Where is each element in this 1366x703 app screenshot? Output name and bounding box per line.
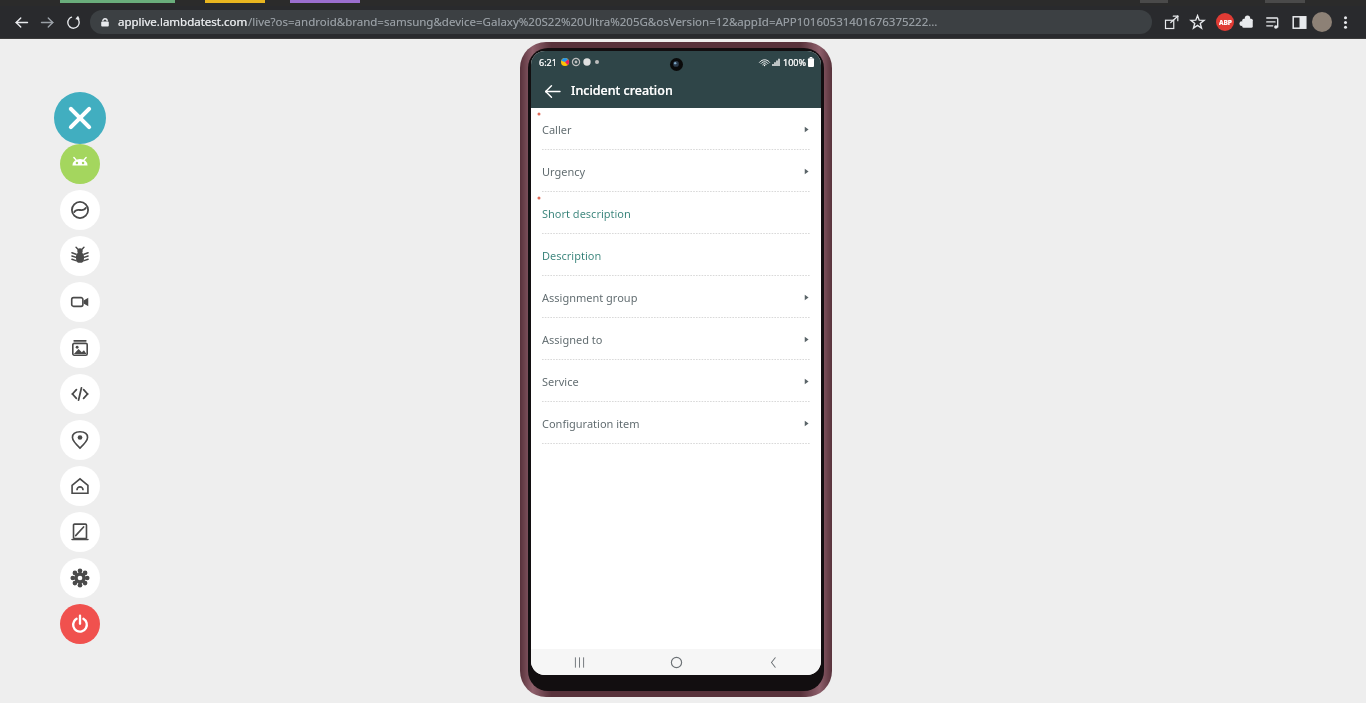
button[interactable]: Power bbox=[60, 604, 100, 644]
button[interactable]: Recent apps bbox=[556, 650, 602, 674]
button[interactable]: Reload bbox=[60, 9, 86, 35]
button[interactable]: Android bbox=[60, 144, 100, 184]
button[interactable]: Extensions bbox=[1234, 9, 1260, 35]
button[interactable]: Share bbox=[1158, 9, 1184, 35]
button[interactable]: Rotate bbox=[60, 190, 100, 230]
button[interactable]: Whiteboard bbox=[60, 512, 100, 552]
staticText: Service bbox=[542, 374, 579, 389]
staticText: Description bbox=[542, 248, 602, 263]
button[interactable]: Side panel bbox=[1286, 9, 1312, 35]
button[interactable]: Home bbox=[653, 650, 699, 674]
button[interactable]: Navigate back bbox=[537, 76, 567, 106]
button[interactable]: Close bbox=[54, 92, 106, 144]
staticText: Assignment group bbox=[542, 290, 638, 305]
button[interactable]: Location bbox=[60, 420, 100, 460]
button[interactable]: Service bbox=[531, 360, 821, 402]
button[interactable]: Urgency bbox=[531, 150, 821, 192]
staticText: Urgency bbox=[542, 164, 586, 179]
button[interactable]: Forward bbox=[34, 9, 60, 35]
button[interactable]: More bbox=[1332, 9, 1358, 35]
staticText: Configuration item bbox=[542, 416, 640, 431]
staticText: Short description bbox=[542, 206, 631, 221]
staticText: Caller bbox=[542, 122, 572, 137]
button[interactable]: Description bbox=[531, 234, 821, 276]
staticText: 6:21 bbox=[539, 56, 557, 68]
button[interactable]: Caller bbox=[531, 108, 821, 150]
button[interactable]: Dev tools bbox=[60, 374, 100, 414]
button[interactable]: Bookmark bbox=[1184, 9, 1210, 35]
button[interactable]: Bug report bbox=[60, 236, 100, 276]
staticText: /live?os=android&brand=samsung&device=Ga… bbox=[248, 14, 938, 30]
staticText: Assigned to bbox=[542, 332, 603, 347]
button[interactable]: Assignment group bbox=[531, 276, 821, 318]
button[interactable]: Profile bbox=[1312, 12, 1332, 32]
button[interactable]: Reading list bbox=[1260, 9, 1286, 35]
button[interactable]: Record video bbox=[60, 282, 100, 322]
button[interactable]: Configuration item bbox=[531, 402, 821, 444]
button[interactable]: Settings bbox=[60, 558, 100, 598]
button[interactable]: Back bbox=[750, 650, 796, 674]
button[interactable]: Back bbox=[8, 9, 34, 35]
button[interactable]: Screenshot bbox=[60, 328, 100, 368]
staticText: Incident creation bbox=[571, 82, 673, 99]
button[interactable]: Assigned to bbox=[531, 318, 821, 360]
button[interactable]: AdBlock bbox=[1216, 13, 1234, 31]
staticText: applive.lambdatest.com bbox=[118, 14, 248, 30]
button[interactable]: Short description bbox=[531, 192, 821, 234]
button[interactable]: Home bbox=[60, 466, 100, 506]
staticText: 100% bbox=[783, 56, 806, 68]
button[interactable]: applive.lambdatest.com bbox=[90, 10, 1152, 34]
staticText: ABP bbox=[1219, 18, 1232, 27]
